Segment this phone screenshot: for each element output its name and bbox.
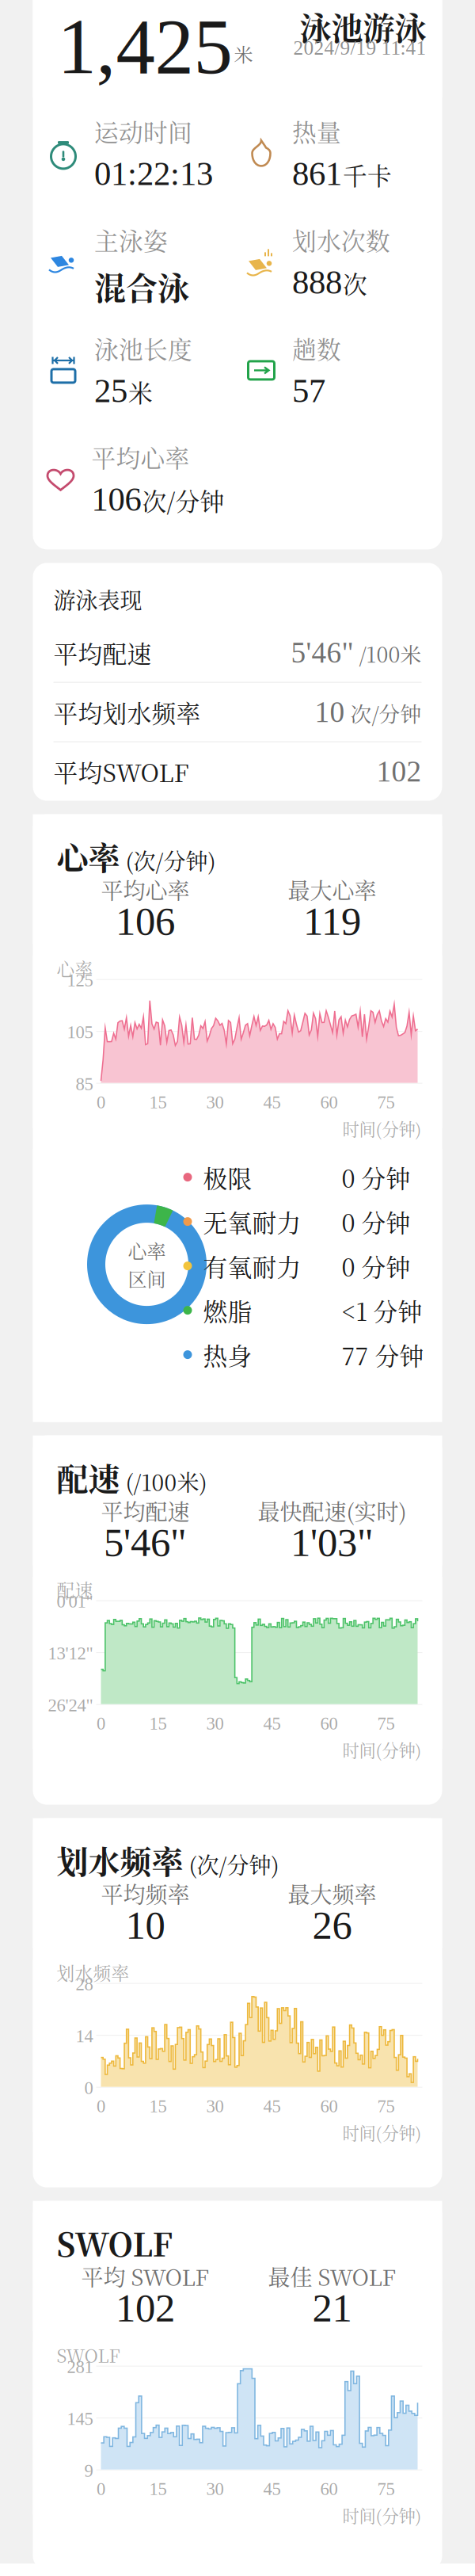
staticText: 区间: [128, 1265, 166, 1292]
staticText: 125: [67, 970, 93, 990]
staticText: 145: [67, 2409, 93, 2429]
staticText: 平均配速: [53, 635, 152, 670]
staticText: 15: [149, 2096, 167, 2116]
staticText: 米: [234, 40, 253, 67]
staticText: 105: [67, 1022, 93, 1042]
staticText: 运动时间: [94, 114, 192, 149]
staticText: 75: [377, 1714, 395, 1733]
staticText: 划水频率: [57, 1959, 129, 1985]
staticText: 60: [320, 2479, 338, 2499]
staticText: 次/分钟: [345, 698, 422, 728]
staticText: 888: [292, 263, 342, 301]
staticText: (次/分钟): [183, 1848, 279, 1880]
staticText: 45: [263, 1092, 281, 1112]
staticText: 15: [149, 1092, 167, 1112]
staticText: 米: [128, 374, 153, 409]
staticText: 热量: [292, 114, 341, 149]
staticText: 0: [97, 1714, 105, 1733]
staticText: 45: [263, 2479, 281, 2499]
staticText: 75: [377, 2096, 395, 2116]
staticText: 85: [76, 1074, 93, 1094]
staticText: 次/分钟: [142, 483, 224, 518]
staticText: 102: [376, 755, 422, 788]
staticText: 划水次数: [292, 222, 390, 257]
staticText: 281: [67, 2357, 93, 2377]
staticText: 57: [292, 372, 325, 409]
staticText: 861: [292, 155, 342, 192]
staticText: 时间(分钟): [342, 1737, 422, 1762]
staticText: 最快配速(实时): [258, 1495, 407, 1527]
staticText: 最佳 SWOLF: [268, 2260, 396, 2292]
staticText: 平均心率: [101, 874, 190, 905]
staticText: 60: [320, 2096, 338, 2116]
staticText: 5'46": [104, 1520, 187, 1565]
staticText: 25: [94, 372, 127, 409]
staticText: 75: [377, 1092, 395, 1112]
staticText: 燃脂: [203, 1293, 252, 1328]
staticText: 45: [263, 2096, 281, 2116]
staticText: 15: [149, 1714, 167, 1733]
staticText: 10: [315, 696, 345, 728]
staticText: 9: [84, 2461, 93, 2481]
staticText: 时间(分钟): [342, 1116, 422, 1140]
staticText: 游泳表现: [53, 584, 142, 615]
staticText: 14: [76, 2026, 93, 2046]
staticText: 30: [206, 1714, 224, 1733]
staticText: 01:22:13: [94, 155, 213, 192]
staticText: 119: [303, 899, 361, 943]
staticText: 0 分钟: [342, 1160, 410, 1195]
staticText: 混合泳: [94, 263, 189, 309]
staticText: 30: [206, 1092, 224, 1112]
staticText: 平均SWOLF: [53, 754, 189, 789]
staticText: 0: [97, 2096, 105, 2116]
staticText: 45: [263, 1714, 281, 1733]
staticText: 平均划水频率: [53, 695, 201, 730]
staticText: 无氧耐力: [203, 1204, 301, 1239]
staticText: 次: [343, 266, 367, 300]
staticText: 泳池游泳: [300, 3, 426, 49]
staticText: (次/分钟): [120, 844, 216, 876]
staticText: 102: [116, 2286, 175, 2330]
staticText: 心率: [57, 955, 93, 981]
staticText: 60: [320, 1092, 338, 1112]
staticText: 30: [206, 2096, 224, 2116]
staticText: 趟数: [292, 331, 341, 366]
staticText: 0: [84, 2078, 93, 2098]
staticText: 13'12": [48, 1643, 93, 1663]
staticText: 1'03": [291, 1520, 374, 1565]
staticText: (/100米): [120, 1465, 207, 1497]
staticText: <1 分钟: [342, 1293, 422, 1328]
staticText: 26: [312, 1903, 352, 1947]
staticText: 0: [97, 1092, 105, 1112]
staticText: 0 分钟: [342, 1248, 410, 1283]
staticText: 有氧耐力: [203, 1248, 301, 1283]
staticText: 平均配速: [101, 1495, 190, 1527]
staticText: 26'24": [48, 1695, 93, 1715]
staticText: 1,425: [57, 3, 232, 90]
staticText: 平均 SWOLF: [81, 2260, 209, 2292]
staticText: 5'46": [291, 636, 353, 669]
staticText: 30: [206, 2479, 224, 2499]
staticText: 106: [116, 899, 175, 943]
staticText: 0'01": [57, 1592, 93, 1611]
staticText: 划水频率: [57, 1837, 183, 1883]
staticText: 心率: [57, 833, 120, 879]
staticText: 时间(分钟): [342, 2503, 422, 2527]
staticText: 极限: [203, 1160, 252, 1195]
staticText: 最大心率: [288, 874, 376, 905]
staticText: 0 分钟: [342, 1204, 410, 1239]
staticText: 10: [125, 1903, 165, 1947]
staticText: 配速: [57, 1454, 120, 1500]
staticText: 75: [377, 2479, 395, 2499]
staticText: 热身: [203, 1337, 252, 1372]
staticText: 配速: [57, 1577, 93, 1602]
staticText: SWOLF: [57, 2342, 120, 2368]
staticText: 千卡: [343, 157, 392, 192]
staticText: 21: [312, 2286, 352, 2330]
staticText: 时间(分钟): [342, 2120, 422, 2144]
staticText: 泳池长度: [94, 331, 192, 366]
staticText: /100米: [353, 638, 422, 669]
staticText: 最大频率: [288, 1878, 376, 1909]
staticText: 106: [91, 480, 141, 518]
staticText: 77 分钟: [342, 1337, 424, 1372]
